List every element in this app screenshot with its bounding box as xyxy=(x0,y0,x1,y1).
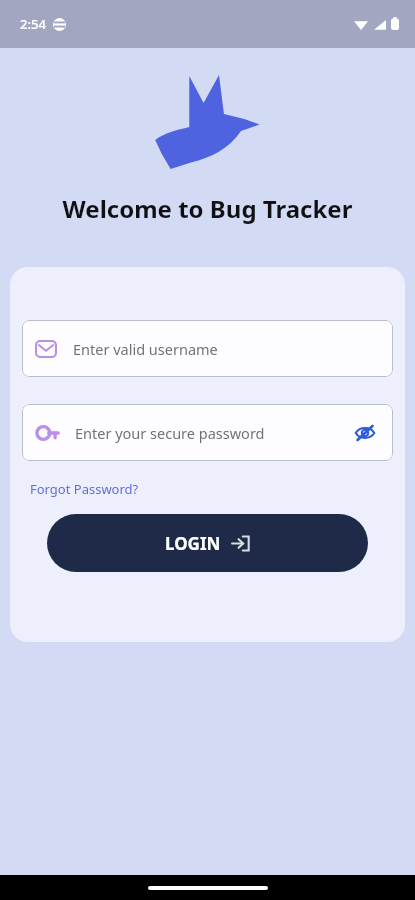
staticText: LOGIN xyxy=(165,532,221,555)
button[interactable]: Forgot Password? xyxy=(22,477,147,501)
staticText: 2:54 xyxy=(20,15,46,33)
staticText: Enter your secure password xyxy=(75,423,350,443)
staticText: Enter valid username xyxy=(73,339,380,359)
button[interactable]: Toggle password visibility xyxy=(350,418,380,448)
button[interactable]: Enter valid username xyxy=(22,320,393,377)
button[interactable]: Enter your secure password xyxy=(22,404,393,461)
button[interactable]: LOGIN xyxy=(47,514,368,572)
staticText: Forgot Password? xyxy=(30,480,139,498)
staticText: Welcome to Bug Tracker xyxy=(0,192,415,225)
